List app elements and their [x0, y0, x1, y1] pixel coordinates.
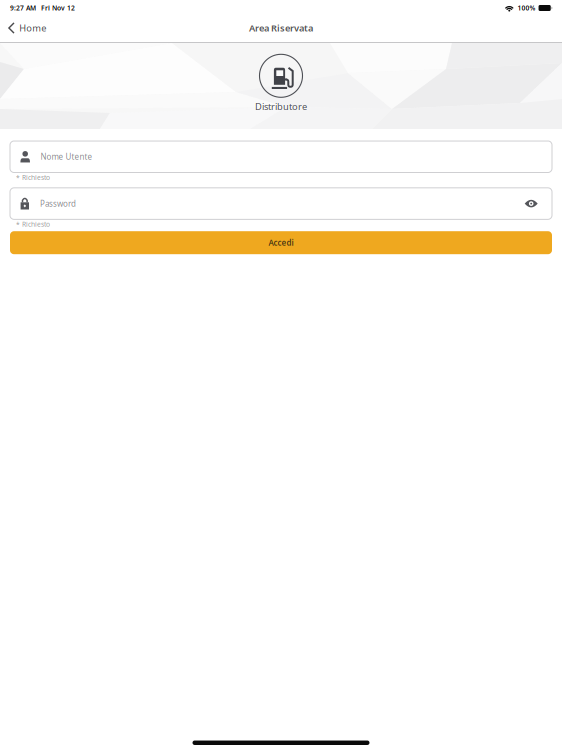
staticText: 100% [517, 4, 535, 12]
button[interactable]: Home [0, 17, 54, 39]
button[interactable]: Accedi [10, 231, 552, 254]
staticText: Fri Nov 12 [41, 4, 75, 12]
staticText: Distributore [255, 100, 307, 113]
staticText: Password [40, 198, 76, 209]
staticText: Accedi [268, 237, 293, 248]
staticText: * Richiesto [16, 220, 50, 229]
staticText: Nome Utente [40, 151, 92, 162]
staticText: Area Riservata [249, 22, 313, 34]
button[interactable]: Mostra password [521, 193, 541, 214]
staticText: Home [19, 22, 46, 34]
staticText: * Richiesto [16, 173, 50, 182]
staticText: 9:27 AM [10, 4, 36, 12]
